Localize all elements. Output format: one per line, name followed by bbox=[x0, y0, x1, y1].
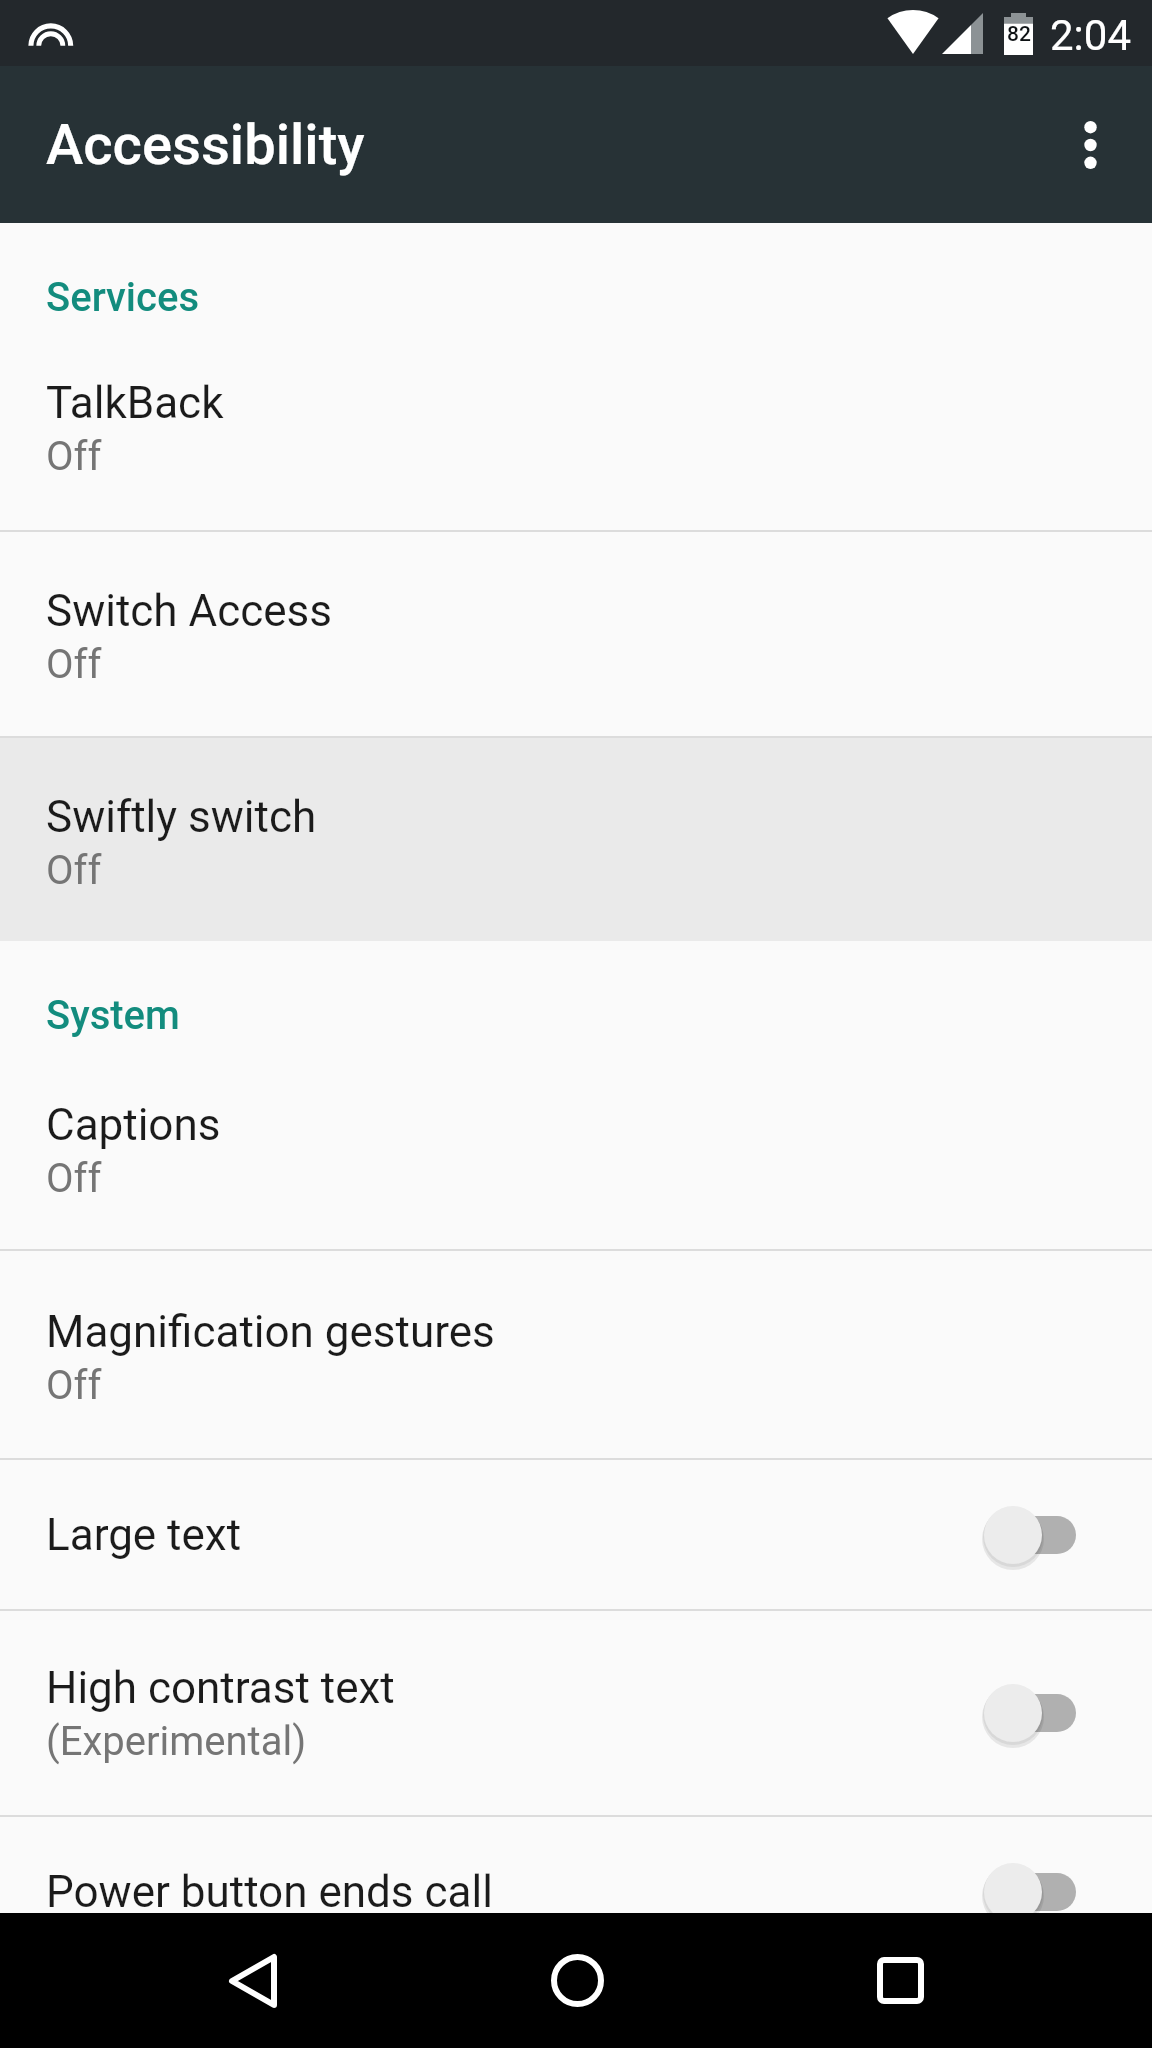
staticText: System bbox=[46, 992, 180, 1039]
button[interactable]: Captions bbox=[0, 1046, 1152, 1249]
staticText: Swiftly switch bbox=[46, 791, 317, 843]
staticText: Captions bbox=[46, 1099, 221, 1151]
staticText: Magnification gestures bbox=[46, 1306, 495, 1358]
staticText: 82 bbox=[1007, 22, 1031, 47]
button[interactable]: TalkBack bbox=[0, 328, 1152, 530]
button[interactable]: Switch Access bbox=[0, 532, 1152, 736]
staticText: Off bbox=[46, 847, 102, 894]
staticText: High contrast text bbox=[46, 1662, 395, 1714]
button[interactable]: Swiftly switch bbox=[0, 738, 1152, 941]
staticText: Accessibility bbox=[46, 112, 365, 178]
button[interactable]: Magnification gestures bbox=[0, 1251, 1152, 1458]
staticText: Large text bbox=[46, 1509, 242, 1561]
button[interactable]: More options bbox=[1029, 66, 1152, 223]
staticText: Power button ends call bbox=[46, 1866, 493, 1913]
button[interactable]: Large text bbox=[0, 1460, 1152, 1609]
button[interactable]: Power button ends call bbox=[0, 1817, 1152, 1913]
staticText: Services bbox=[46, 274, 200, 321]
button[interactable]: Home bbox=[517, 1913, 637, 2048]
staticText: (Experimental) bbox=[46, 1718, 307, 1765]
staticText: 2:04 bbox=[1050, 11, 1131, 60]
staticText: Off bbox=[46, 433, 102, 480]
button[interactable]: Toggle bbox=[986, 1490, 1106, 1580]
staticText: TalkBack bbox=[46, 377, 224, 429]
staticText: Switch Access bbox=[46, 585, 332, 637]
button[interactable]: Toggle bbox=[986, 1668, 1106, 1758]
staticText: Off bbox=[46, 1362, 102, 1409]
button[interactable]: Toggle bbox=[986, 1847, 1106, 1913]
button[interactable]: Back bbox=[193, 1913, 313, 2048]
staticText: Off bbox=[46, 1155, 102, 1202]
button[interactable]: Recent apps bbox=[840, 1913, 960, 2048]
button[interactable]: High contrast text bbox=[0, 1611, 1152, 1815]
staticText: Off bbox=[46, 641, 102, 688]
